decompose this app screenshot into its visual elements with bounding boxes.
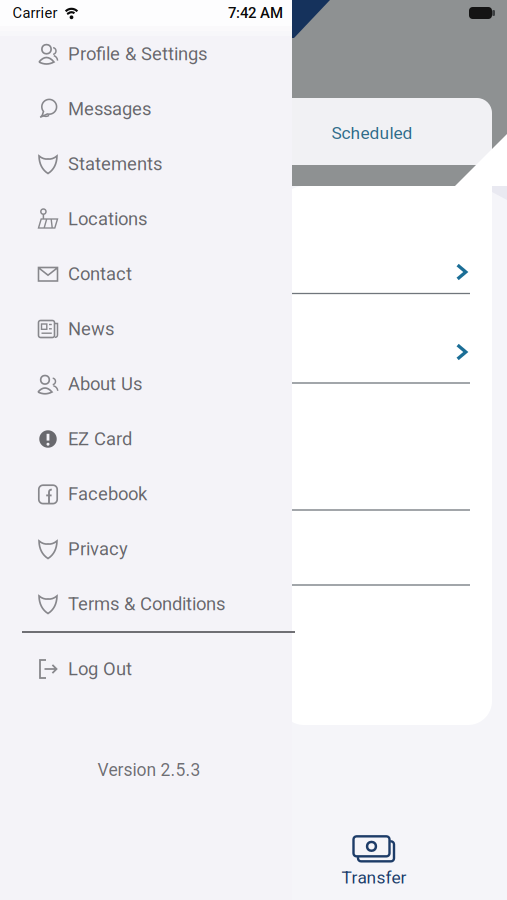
staticText: Statements: [68, 153, 162, 175]
button[interactable]: Locations: [36, 196, 292, 242]
button[interactable]: Log Out: [36, 646, 292, 692]
staticText: Messages: [68, 98, 151, 120]
staticText: 7:42 AM: [228, 4, 283, 22]
staticText: Terms & Conditions: [68, 593, 225, 615]
button[interactable]: Statements: [36, 141, 292, 187]
staticText: About Us: [68, 373, 142, 395]
button[interactable]: Terms & Conditions: [36, 581, 292, 627]
staticText: Version 2.5.3: [97, 760, 200, 780]
button[interactable]: About Us: [36, 361, 292, 407]
staticText: News: [68, 318, 114, 340]
staticText: Contact: [68, 263, 132, 285]
button[interactable]: EZ Card: [36, 416, 292, 462]
button[interactable]: Profile & Settings: [36, 31, 292, 77]
button[interactable]: Facebook: [36, 471, 292, 517]
staticText: Carrier: [12, 4, 57, 22]
staticText: EZ Card: [68, 428, 132, 450]
button[interactable]: Select to account: [292, 323, 472, 380]
button[interactable]: Scheduled: [297, 105, 447, 161]
staticText: Scheduled: [331, 123, 412, 143]
staticText: Profile & Settings: [68, 43, 207, 65]
staticText: Log Out: [68, 658, 132, 680]
staticText: Locations: [68, 208, 147, 230]
staticText: Privacy: [68, 538, 128, 560]
button[interactable]: Messages: [36, 86, 292, 132]
button[interactable]: News: [36, 306, 292, 352]
button[interactable]: Transfer: [324, 831, 424, 889]
button[interactable]: Select from account: [292, 243, 472, 300]
staticText: Transfer: [341, 867, 406, 888]
staticText: Facebook: [68, 483, 147, 505]
button[interactable]: Contact: [36, 251, 292, 297]
button[interactable]: Privacy: [36, 526, 292, 572]
